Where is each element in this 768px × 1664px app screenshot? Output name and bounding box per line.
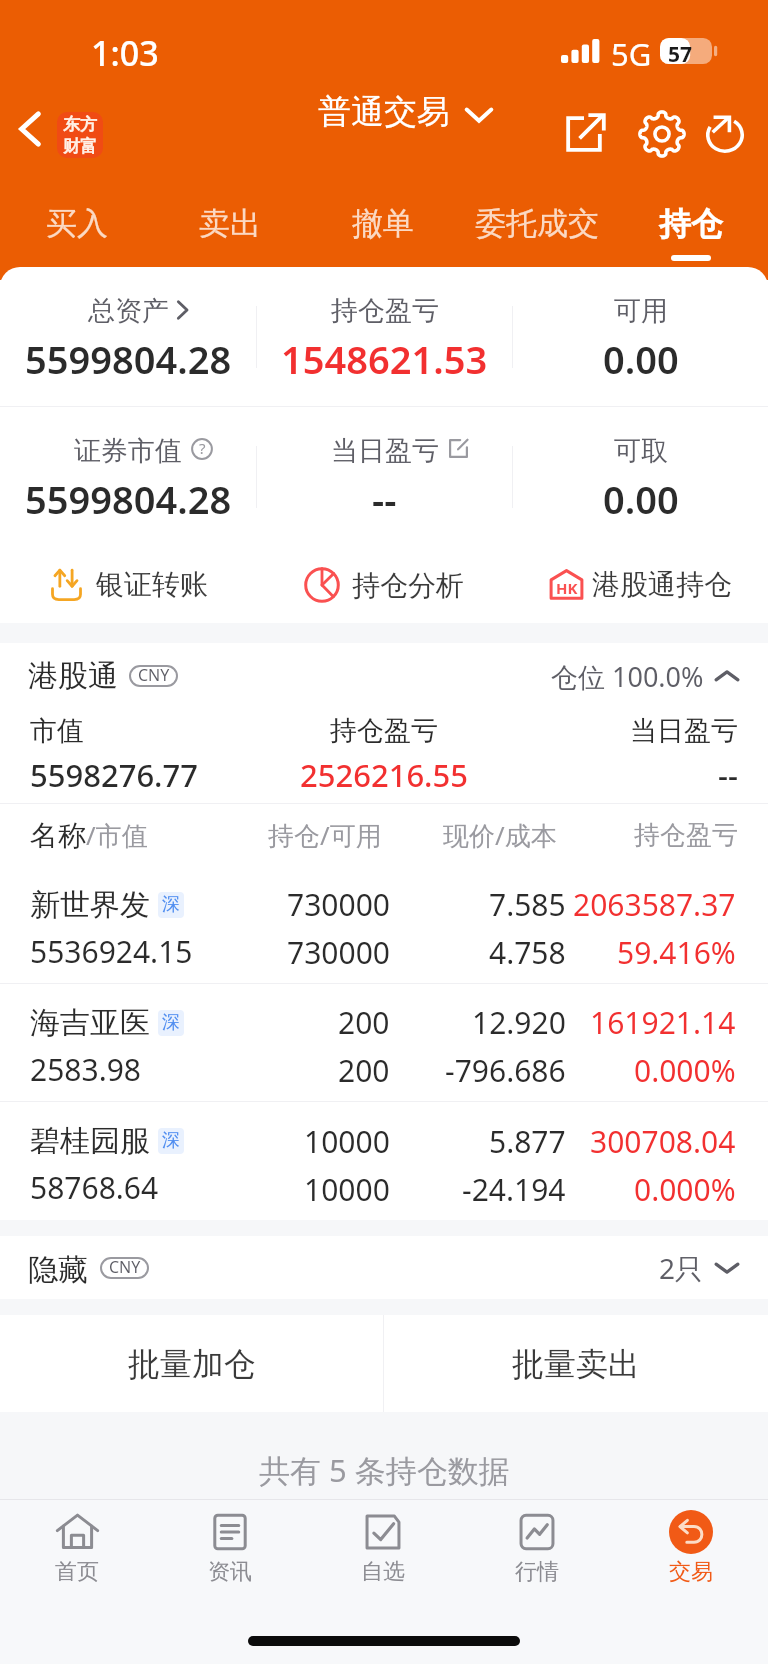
- staticText: 5599804.28: [25, 333, 232, 385]
- button[interactable]: 东方财富: [57, 112, 103, 158]
- button[interactable]: 当日盈亏: [257, 407, 512, 546]
- staticText: -24.194: [462, 1169, 566, 1210]
- staticText: 持仓: [268, 820, 320, 853]
- staticText: 0.00: [603, 333, 679, 385]
- button[interactable]: 海吉亚医: [0, 984, 768, 1102]
- staticText: 市值: [30, 714, 84, 748]
- button[interactable]: 银证转账: [0, 546, 256, 623]
- button[interactable]: 买入: [0, 178, 153, 267]
- staticText: 自选: [361, 1558, 405, 1586]
- staticText: 持仓分析: [352, 568, 464, 603]
- staticText: 现价: [443, 820, 495, 853]
- button[interactable]: 首页: [0, 1500, 153, 1618]
- staticText: 证券市值: [74, 434, 182, 468]
- button[interactable]: 持仓: [614, 178, 768, 267]
- button[interactable]: 可用: [513, 267, 768, 406]
- button[interactable]: HK: [512, 546, 768, 623]
- button[interactable]: Settings: [632, 104, 692, 164]
- button[interactable]: Refresh: [695, 104, 755, 164]
- staticText: 撤单: [352, 204, 414, 243]
- button[interactable]: 交易: [614, 1500, 768, 1618]
- staticText: 7.585: [489, 884, 566, 925]
- staticText: 5.877: [489, 1121, 566, 1162]
- staticText: ?: [199, 438, 206, 458]
- staticText: 0.00: [603, 473, 679, 525]
- button[interactable]: 委托成交: [460, 178, 614, 267]
- button[interactable]: 持仓盈亏: [257, 267, 512, 406]
- staticText: 深: [162, 893, 180, 916]
- button[interactable]: 证券市值: [0, 407, 256, 546]
- button[interactable]: 持仓分析: [256, 546, 512, 623]
- staticText: 新世界发: [30, 886, 150, 924]
- staticText: 12.920: [472, 1002, 566, 1043]
- staticText: 10000: [304, 1121, 390, 1162]
- staticText: 161921.14: [590, 1002, 736, 1043]
- staticText: 深: [162, 1011, 180, 1034]
- button[interactable]: 批量卖出: [384, 1315, 768, 1412]
- button[interactable]: 可取: [513, 407, 768, 546]
- staticText: 共有 5 条持仓数据: [259, 1449, 510, 1491]
- staticText: 财富: [63, 136, 97, 157]
- button[interactable]: 自选: [306, 1500, 460, 1618]
- staticText: 200: [338, 1050, 390, 1091]
- staticText: 卖出: [199, 204, 261, 243]
- staticText: 普通交易: [318, 91, 450, 133]
- button[interactable]: 卖出: [153, 178, 306, 267]
- button[interactable]: 批量加仓: [0, 1315, 383, 1412]
- staticText: 首页: [55, 1558, 99, 1586]
- button[interactable]: Back: [4, 103, 56, 155]
- button[interactable]: 行情: [460, 1500, 614, 1618]
- staticText: 0.000%: [634, 1050, 736, 1091]
- button[interactable]: 港股通: [28, 643, 740, 709]
- staticText: 58768.64: [30, 1167, 159, 1208]
- staticText: 5G: [611, 33, 652, 75]
- staticText: 10000: [304, 1169, 390, 1210]
- staticText: 730000: [287, 932, 390, 973]
- staticText: --: [372, 473, 397, 525]
- staticText: 4.758: [489, 932, 566, 973]
- staticText: 委托成交: [475, 204, 599, 243]
- staticText: 资讯: [208, 1558, 252, 1586]
- staticText: 5536924.15: [30, 931, 193, 972]
- staticText: 东方: [63, 114, 97, 135]
- staticText: 交易: [669, 1558, 713, 1586]
- staticText: 银证转账: [96, 567, 208, 602]
- button[interactable]: 总资产: [0, 267, 256, 406]
- staticText: 港股通: [28, 657, 118, 695]
- staticText: /市值: [86, 817, 148, 853]
- button[interactable]: 碧桂园服: [0, 1102, 768, 1220]
- staticText: 持仓盈亏: [331, 294, 439, 328]
- button[interactable]: 资讯: [153, 1500, 306, 1618]
- button[interactable]: 撤单: [306, 178, 460, 267]
- staticText: 0.000%: [634, 1169, 736, 1210]
- staticText: 持仓盈亏: [634, 819, 738, 852]
- staticText: 隐藏: [28, 1251, 88, 1289]
- staticText: 可取: [614, 434, 668, 468]
- staticText: 2583.98: [30, 1049, 141, 1090]
- staticText: 仓位 100.0%: [551, 658, 704, 695]
- button[interactable]: 隐藏: [28, 1236, 740, 1299]
- staticText: CNY: [109, 1256, 141, 1278]
- staticText: 深: [162, 1129, 180, 1152]
- staticText: 当日盈亏: [630, 714, 738, 748]
- staticText: 300708.04: [590, 1121, 736, 1162]
- staticText: 港股通持仓: [592, 567, 732, 602]
- staticText: /成本: [495, 817, 557, 853]
- staticText: 5599804.28: [25, 473, 232, 525]
- staticText: CNY: [138, 664, 170, 686]
- staticText: HK: [556, 578, 578, 598]
- staticText: 730000: [287, 884, 390, 925]
- staticText: 当日盈亏: [331, 434, 439, 468]
- staticText: 57: [668, 40, 693, 66]
- staticText: 总资产: [88, 294, 169, 328]
- staticText: 1548621.53: [281, 333, 488, 385]
- staticText: 买入: [46, 204, 108, 243]
- staticText: --: [718, 754, 738, 796]
- staticText: 碧桂园服: [30, 1122, 150, 1160]
- staticText: 持仓: [659, 204, 723, 244]
- button[interactable]: 新世界发: [0, 866, 768, 984]
- button[interactable]: Share: [554, 104, 614, 164]
- staticText: 海吉亚医: [30, 1004, 150, 1042]
- staticText: 批量加仓: [128, 1344, 256, 1384]
- staticText: 2526216.55: [300, 754, 469, 796]
